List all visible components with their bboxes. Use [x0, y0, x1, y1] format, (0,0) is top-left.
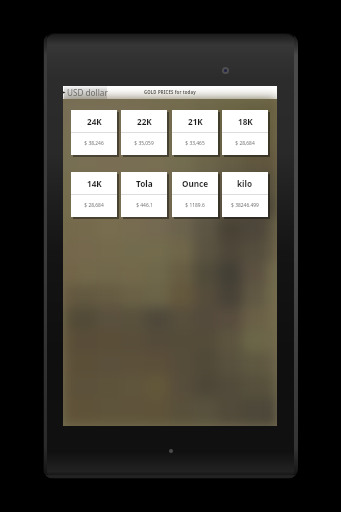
staticText: Tola [136, 178, 153, 189]
staticText: $ 33,465 [185, 140, 205, 147]
button[interactable]: USD dollar [64, 86, 107, 99]
staticText: GOLD PRICES for today [144, 89, 196, 95]
staticText: 22K [137, 116, 152, 127]
staticText: $ 446.1 [136, 202, 153, 209]
staticText: $ 38246.499 [231, 202, 259, 209]
button[interactable]: Ounce [172, 172, 218, 217]
staticText: $ 1189.6 [185, 202, 205, 209]
staticText: kilo [237, 178, 253, 189]
staticText: 18K [238, 116, 253, 127]
button[interactable]: kilo [222, 172, 268, 217]
staticText: 24K [87, 116, 102, 127]
button[interactable]: Tola [121, 172, 167, 217]
button[interactable]: 22K [121, 110, 167, 155]
staticText: $ 35,059 [134, 140, 154, 147]
button[interactable]: 18K [222, 110, 268, 155]
staticText: USD dollar [67, 87, 108, 98]
staticText: 14K [87, 178, 102, 189]
staticText: $ 28,684 [235, 140, 255, 147]
staticText: Ounce [182, 178, 209, 189]
staticText: 21K [188, 116, 203, 127]
button[interactable]: 21K [172, 110, 218, 155]
button[interactable]: 14K [71, 172, 117, 217]
staticText: $ 38,246 [84, 140, 104, 147]
button[interactable]: 24K [71, 110, 117, 155]
staticText: $ 28,684 [84, 202, 104, 209]
